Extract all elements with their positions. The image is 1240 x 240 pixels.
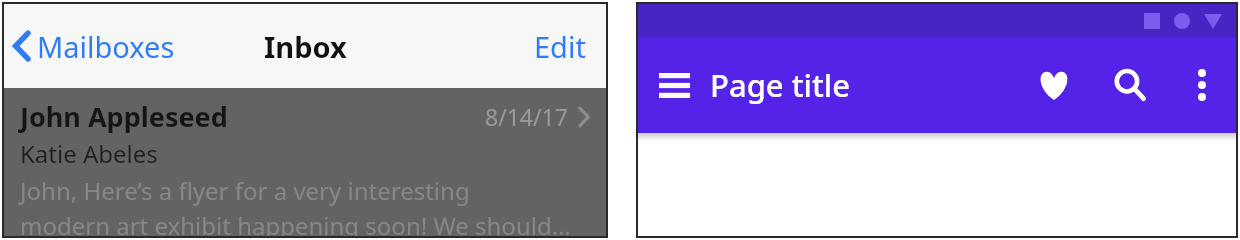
staticText: Edit (534, 27, 586, 66)
staticText: John, Here’s a flyer for a very interest… (20, 174, 470, 207)
button[interactable]: Mailboxes (4, 4, 187, 88)
staticText: Mailboxes (37, 27, 175, 66)
staticText: John Appleseed (20, 98, 485, 135)
button[interactable]: Favorite (1016, 37, 1092, 133)
staticText: Inbox (264, 27, 347, 66)
staticText: 8/14/17 (485, 101, 568, 132)
button[interactable]: More options (1168, 37, 1236, 133)
button[interactable]: Search (1092, 37, 1168, 133)
button[interactable]: Edit (514, 4, 606, 88)
button[interactable]: John Appleseed (4, 88, 606, 236)
button[interactable]: Open navigation menu (638, 37, 710, 133)
staticText: Page title (710, 64, 850, 106)
staticText: modern art exhibit happening soon! We sh… (20, 209, 571, 236)
staticText: Katie Abeles (20, 137, 158, 170)
